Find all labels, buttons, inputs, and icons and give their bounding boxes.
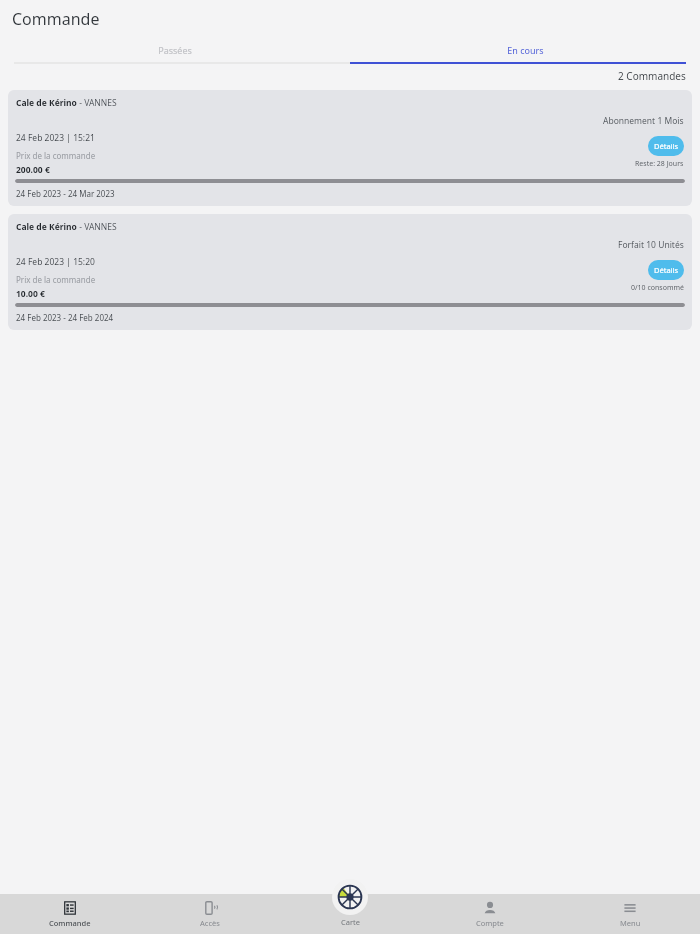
staticText: - VANNES (77, 221, 117, 233)
button[interactable]: Accès (140, 894, 280, 934)
staticText: 200.00 € (16, 164, 50, 176)
staticText: Passées (158, 44, 192, 56)
staticText: 24 Feb 2023 - 24 Mar 2023 (16, 188, 115, 199)
staticText: Carte (341, 917, 360, 927)
staticText: 24 Feb 2023 - 24 Feb 2024 (16, 312, 114, 323)
staticText: 0/10 consommé (631, 283, 684, 293)
staticText: 2 Commandes (618, 69, 686, 83)
staticText: Détails (654, 265, 679, 275)
button[interactable]: Passées (0, 38, 350, 62)
staticText: 24 Feb 2023 | 15:20 (16, 256, 95, 268)
staticText: Cale de Kérino (16, 97, 77, 109)
staticText: Prix de la commande (16, 150, 96, 161)
staticText: Accès (200, 918, 220, 928)
staticText: Cale de Kérino (16, 221, 77, 233)
button[interactable]: Détails (648, 136, 684, 156)
staticText: Prix de la commande (16, 274, 96, 285)
staticText: 10.00 € (16, 288, 45, 300)
button[interactable]: Carte (320, 879, 380, 934)
button[interactable]: En cours (350, 38, 700, 62)
staticText: Menu (620, 918, 641, 928)
staticText: Abonnement 1 Mois (603, 115, 684, 127)
button[interactable]: Détails (648, 260, 684, 280)
staticText: Commande (12, 8, 100, 30)
staticText: - VANNES (77, 97, 117, 109)
staticText: Forfait 10 Unités (618, 239, 684, 251)
staticText: Commande (49, 918, 91, 928)
staticText: Reste: 28 Jours (635, 159, 684, 169)
button[interactable]: Menu (560, 894, 700, 934)
button[interactable]: Cale de Kérino (8, 214, 692, 330)
staticText: En cours (507, 44, 544, 56)
button[interactable]: Compte (420, 894, 560, 934)
staticText: Compte (476, 918, 504, 928)
staticText: 24 Feb 2023 | 15:21 (16, 132, 95, 144)
staticText: Détails (654, 141, 679, 151)
button[interactable]: Commande (0, 894, 140, 934)
button[interactable]: Cale de Kérino (8, 90, 692, 206)
